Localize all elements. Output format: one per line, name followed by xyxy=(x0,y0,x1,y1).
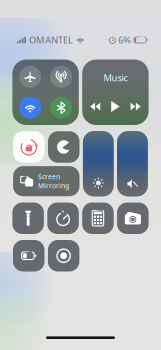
button[interactable]: Wi-Fi xyxy=(19,97,41,119)
button[interactable]: Timer xyxy=(47,202,79,234)
button[interactable]: Now Playing, Music xyxy=(82,59,149,125)
button[interactable]: Airplane Mode xyxy=(19,66,41,88)
button[interactable]: Bluetooth xyxy=(50,97,72,119)
button[interactable]: Rotation Lock xyxy=(13,131,45,163)
button[interactable]: Flashlight xyxy=(12,202,44,234)
button[interactable]: Volume xyxy=(117,131,148,196)
staticText: Music xyxy=(103,71,127,84)
button[interactable]: Brightness xyxy=(83,131,114,196)
button[interactable]: Low Power Mode xyxy=(13,240,44,271)
button[interactable]: Calculator xyxy=(82,202,114,234)
button[interactable]: Do Not Disturb xyxy=(48,131,79,163)
button[interactable]: Camera xyxy=(117,202,149,234)
button[interactable]: Cellular Data xyxy=(50,66,72,88)
staticText: Screen Mirroring xyxy=(38,172,69,190)
staticText: OMANTEL xyxy=(29,34,73,46)
staticText: 6% xyxy=(118,34,131,46)
button[interactable]: Screen Mirroring xyxy=(13,166,79,196)
button[interactable]: Screen Recording xyxy=(48,240,79,271)
